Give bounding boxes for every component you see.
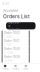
staticText: Order 1039 — [4, 55, 20, 59]
staticText: Order 1040 — [4, 47, 20, 51]
button[interactable]: Order 1040 — [0, 47, 40, 55]
staticText: 1 item — [4, 43, 11, 46]
staticText: Stats — [23, 67, 28, 70]
staticText: Delivery — [8, 21, 20, 28]
button[interactable]: Home — [0, 63, 10, 72]
staticText: Order 1041 — [4, 39, 19, 43]
staticText: 9:41 — [2, 2, 8, 6]
button[interactable]: Orders — [10, 63, 21, 72]
button[interactable]: Delivery — [6, 22, 35, 29]
staticText: Home — [2, 67, 8, 70]
staticText: Accepted — [3, 8, 18, 13]
staticText: 25–30 min — [8, 28, 19, 31]
button[interactable]: Order 1041 — [0, 39, 40, 47]
button[interactable]: Order 1042 — [0, 31, 40, 39]
staticText: 3 items — [4, 59, 12, 62]
button[interactable]: Stats — [21, 63, 31, 72]
button[interactable]: Order 1039 — [0, 55, 40, 63]
staticText: Orders List — [3, 13, 30, 19]
staticText: Orders — [12, 67, 19, 70]
staticText: 2 items — [4, 35, 12, 38]
staticText: 4 items — [4, 51, 13, 54]
staticText: Order 1042 — [4, 31, 20, 35]
